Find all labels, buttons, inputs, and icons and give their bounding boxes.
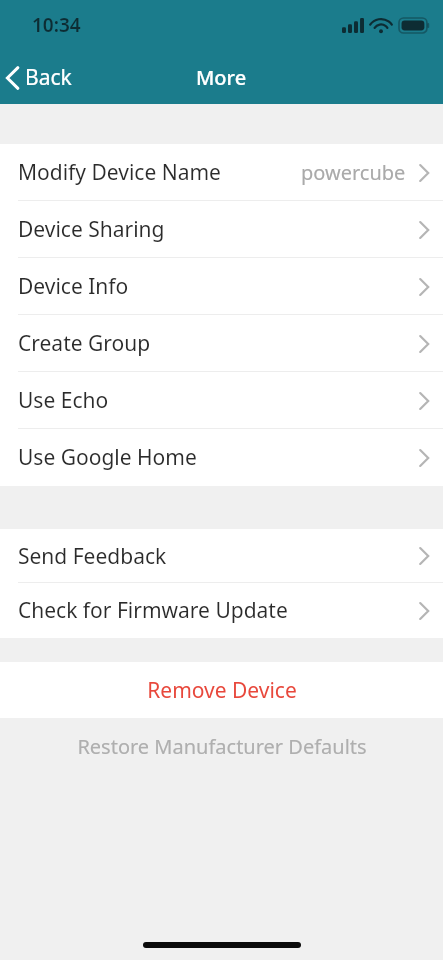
staticText: Remove Device <box>147 676 297 705</box>
button[interactable]: Use Google Home <box>0 429 443 486</box>
button[interactable]: Send Feedback <box>0 529 443 583</box>
staticText: Device Info <box>18 272 129 301</box>
staticText: powercube <box>301 159 406 186</box>
button[interactable]: Device Sharing <box>0 201 443 258</box>
staticText: Send Feedback <box>18 542 167 571</box>
button[interactable]: Remove Device <box>0 662 443 718</box>
button[interactable]: Check for Firmware Update <box>0 583 443 638</box>
staticText: Back <box>25 63 72 92</box>
staticText: Device Sharing <box>18 215 165 244</box>
button[interactable]: Device Info <box>0 258 443 315</box>
staticText: Use Echo <box>18 386 109 415</box>
button[interactable]: Create Group <box>0 315 443 372</box>
staticText: More <box>196 64 247 91</box>
staticText: Use Google Home <box>18 443 197 472</box>
button[interactable]: Restore Manufacturer Defaults <box>0 718 443 774</box>
staticText: 10:34 <box>32 12 81 38</box>
staticText: Modify Device Name <box>18 158 221 187</box>
staticText: Check for Firmware Update <box>18 596 288 625</box>
button[interactable]: Back <box>0 57 82 98</box>
staticText: Create Group <box>18 329 151 358</box>
button[interactable]: Modify Device Name <box>0 144 443 201</box>
staticText: Restore Manufacturer Defaults <box>77 733 367 760</box>
button[interactable]: Use Echo <box>0 372 443 429</box>
